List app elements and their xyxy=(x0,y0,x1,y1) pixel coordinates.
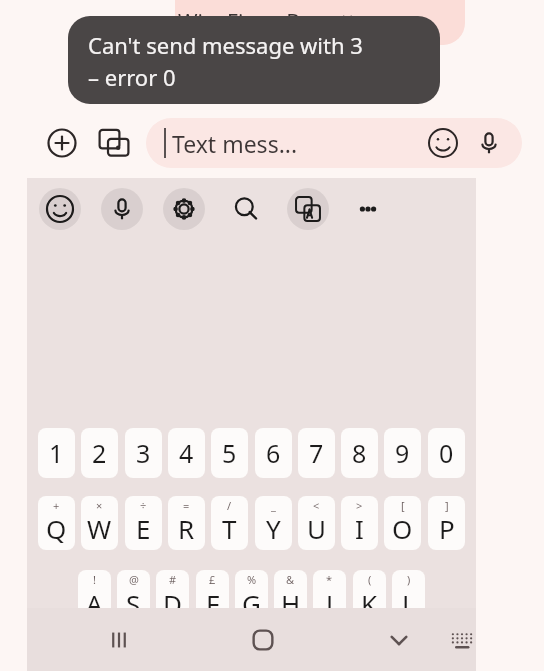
staticText: S xyxy=(126,586,141,621)
staticText: U xyxy=(307,511,327,546)
staticText: Q xyxy=(46,511,67,546)
button[interactable]: ~ xyxy=(101,642,138,671)
staticText: Y xyxy=(266,511,281,546)
button[interactable]: 6 xyxy=(255,428,292,478)
button[interactable]: Emoji xyxy=(424,124,462,162)
button[interactable]: More options xyxy=(347,188,389,230)
button[interactable]: Add attachment xyxy=(40,121,84,165)
staticText: 9 xyxy=(395,436,410,470)
button[interactable]: Backspace xyxy=(407,642,463,671)
button[interactable]: = xyxy=(168,496,205,550)
button[interactable]: 0 xyxy=(428,428,465,478)
button[interactable]: & xyxy=(274,570,307,626)
staticText: Text mess... xyxy=(172,128,298,159)
button[interactable]: Emoji xyxy=(39,188,81,230)
staticText: # xyxy=(169,572,177,587)
button[interactable]: Home xyxy=(239,616,287,664)
staticText: H xyxy=(281,586,301,621)
staticText: × xyxy=(96,498,103,513)
button[interactable]: ) xyxy=(392,570,425,626)
button[interactable]: [ xyxy=(384,496,421,550)
button[interactable]: # xyxy=(156,570,189,626)
button[interactable]: 9 xyxy=(384,428,421,478)
button[interactable]: Translate xyxy=(287,188,329,230)
staticText: W xyxy=(87,511,112,546)
staticText: Win. Fiona Barrett xyxy=(178,8,356,37)
button[interactable]: 2 xyxy=(81,428,118,478)
staticText: R xyxy=(178,511,195,546)
staticText: ÷ xyxy=(140,498,147,513)
staticText: = xyxy=(183,498,190,513)
staticText: ~ xyxy=(117,643,123,657)
staticText: A xyxy=(86,586,103,621)
button[interactable]: / xyxy=(211,496,248,550)
staticText: £ xyxy=(209,572,216,587)
button[interactable]: _ xyxy=(255,496,292,550)
button[interactable]: Recents xyxy=(95,616,143,664)
staticText: 3 xyxy=(136,436,151,470)
staticText: @ xyxy=(129,572,139,587)
staticText: ) xyxy=(407,572,411,587)
button[interactable]: @ xyxy=(117,570,150,626)
button[interactable]: + xyxy=(38,496,75,550)
button[interactable]: ] xyxy=(428,496,465,550)
staticText: _ xyxy=(271,498,276,513)
button[interactable]: Hide keyboard xyxy=(375,616,423,664)
button[interactable]: > xyxy=(341,496,378,550)
button[interactable]: % xyxy=(235,570,268,626)
staticText: D xyxy=(163,586,182,621)
button[interactable]: Voice input xyxy=(101,188,143,230)
button[interactable]: : xyxy=(231,642,268,671)
button[interactable]: 8 xyxy=(341,428,378,478)
staticText: G xyxy=(242,586,261,621)
staticText: J xyxy=(326,586,334,621)
button[interactable]: £ xyxy=(196,570,229,626)
button[interactable]: ( xyxy=(353,570,386,626)
staticText: I xyxy=(355,511,364,546)
staticText: * xyxy=(326,572,333,587)
button[interactable]: ! xyxy=(78,570,111,626)
button[interactable]: Text mess... xyxy=(146,118,522,168)
staticText: ] xyxy=(445,498,449,513)
button[interactable]: < xyxy=(298,496,335,550)
button[interactable]: 3 xyxy=(125,428,162,478)
button[interactable]: × xyxy=(81,496,118,550)
staticText: F xyxy=(206,586,220,621)
button[interactable]: Search xyxy=(225,188,267,230)
button[interactable]: 4 xyxy=(168,428,205,478)
staticText: ( xyxy=(368,572,372,587)
button[interactable]: 5 xyxy=(211,428,248,478)
staticText: ! xyxy=(93,572,96,587)
staticText: 5 xyxy=(222,436,237,470)
button[interactable]: Voice message xyxy=(470,124,508,162)
button[interactable]: Camera xyxy=(92,121,136,165)
button[interactable]: ? xyxy=(361,642,398,671)
button[interactable]: Settings xyxy=(163,188,205,230)
staticText: + xyxy=(53,498,60,513)
staticText: O xyxy=(392,511,413,546)
button[interactable]: 7 xyxy=(298,428,335,478)
button[interactable]: Change keyboard xyxy=(447,616,476,664)
staticText: 8 xyxy=(352,436,367,470)
button[interactable]: * xyxy=(313,570,346,626)
button[interactable]: 1 xyxy=(38,428,75,478)
button[interactable]: ÷ xyxy=(125,496,162,550)
staticText: K xyxy=(361,586,378,621)
staticText: 2 xyxy=(92,436,107,470)
